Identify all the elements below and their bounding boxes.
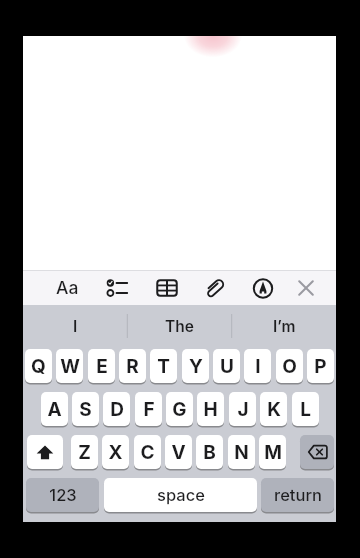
staticText: C [140,441,155,464]
button[interactable]: W [56,349,83,383]
staticText: The [165,317,194,336]
staticText: F [143,398,155,421]
staticText: H [203,398,218,421]
button[interactable]: V [165,435,192,469]
staticText: 123 [49,485,77,505]
button[interactable]: G [166,392,193,426]
staticText: T [157,355,170,378]
button[interactable]: S [72,392,99,426]
staticText: Y [189,355,203,378]
staticText: return [274,485,322,505]
staticText: R [126,355,139,378]
button[interactable]: D [103,392,130,426]
button[interactable]: U [213,349,240,383]
button[interactable]: X [102,435,129,469]
staticText: Aa [56,277,79,298]
staticText: Z [78,441,91,464]
button[interactable] [201,274,229,302]
button[interactable]: space [104,478,257,512]
staticText: Q [31,355,46,378]
staticText: W [60,355,80,378]
staticText: V [171,441,186,464]
button[interactable]: N [228,435,255,469]
staticText: K [267,398,281,421]
button[interactable]: R [119,349,146,383]
button[interactable]: M [259,435,286,469]
button[interactable]: T [150,349,177,383]
button[interactable]: Aa [51,270,83,305]
button[interactable]: Z [71,435,98,469]
button[interactable] [249,274,277,302]
staticText: I [255,355,261,378]
button[interactable]: 123 [26,478,99,512]
staticText: M [264,441,282,464]
staticText: U [220,355,234,378]
button[interactable] [153,274,181,302]
button[interactable]: Q [25,349,52,383]
button[interactable]: H [197,392,224,426]
staticText: space [157,485,205,505]
staticText: X [108,441,123,464]
button[interactable] [300,435,334,469]
staticText: E [96,355,108,378]
button[interactable]: C [134,435,161,469]
button[interactable]: E [88,349,115,383]
staticText: B [203,441,216,464]
staticText: N [234,441,249,464]
button[interactable] [104,274,132,302]
button[interactable]: O [276,349,303,383]
staticText: J [237,398,249,421]
staticText: G [172,398,187,421]
staticText: P [314,355,327,378]
button[interactable]: A [41,392,68,426]
button[interactable]: I’m [232,305,336,347]
staticText: I’m [273,317,296,336]
button[interactable]: L [292,392,319,426]
button[interactable]: K [260,392,287,426]
staticText: S [79,398,92,421]
button[interactable]: B [196,435,223,469]
button[interactable]: return [261,478,334,512]
button[interactable]: The [127,305,232,347]
button[interactable]: I [244,349,271,383]
staticText: O [282,355,297,378]
staticText: A [47,398,62,421]
staticText: I [73,317,78,336]
button[interactable] [292,274,320,302]
button[interactable] [27,435,63,469]
staticText: L [300,398,311,421]
button[interactable]: Y [182,349,209,383]
button[interactable]: J [229,392,256,426]
staticText: D [110,398,124,421]
button[interactable]: P [307,349,334,383]
button[interactable]: F [135,392,162,426]
button[interactable]: I [23,305,127,347]
